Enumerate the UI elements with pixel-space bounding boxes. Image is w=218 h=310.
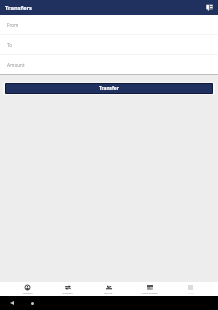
button[interactable]: Messages	[203, 1, 215, 13]
staticText: More	[188, 291, 194, 294]
button[interactable]: From	[0, 15, 218, 34]
staticText: Transfer	[99, 85, 119, 92]
button[interactable]: Home	[27, 298, 37, 308]
button[interactable]: Accounts	[7, 282, 47, 296]
button[interactable]: Transfers	[47, 282, 88, 296]
staticText: To	[7, 42, 13, 48]
button[interactable]: Transfer	[5, 83, 213, 94]
staticText: Amount	[7, 62, 25, 68]
staticText: Check Deposit	[141, 291, 158, 294]
staticText: Accounts	[22, 291, 33, 294]
staticText: Transfers	[5, 4, 32, 12]
staticText: Transfers	[62, 291, 73, 294]
button[interactable]: More	[170, 282, 211, 296]
staticText: Bill Pay	[104, 291, 113, 294]
staticText: From	[7, 22, 19, 28]
button[interactable]: Amount	[0, 55, 218, 74]
button[interactable]: Back	[7, 298, 17, 308]
button[interactable]: Check Deposit	[129, 282, 170, 296]
button[interactable]: Bill Pay	[88, 282, 129, 296]
